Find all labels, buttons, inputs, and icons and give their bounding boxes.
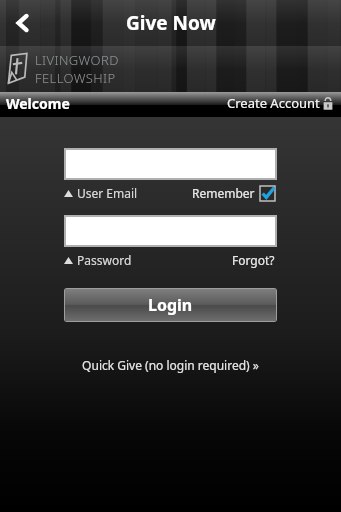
button[interactable]: Login xyxy=(65,289,276,321)
staticText: User Email xyxy=(77,185,138,201)
staticText: Remember xyxy=(192,185,255,201)
button[interactable]: Remember xyxy=(190,183,277,203)
staticText: Welcome xyxy=(6,94,70,113)
button[interactable]: Create Account xyxy=(225,92,335,114)
staticText: FELLOWSHIP xyxy=(35,69,116,87)
staticText: Give Now xyxy=(126,10,216,36)
staticText: LIVINGWORD xyxy=(35,51,119,69)
staticText: Create Account xyxy=(227,94,320,112)
button[interactable]: Quick Give (no login required) » xyxy=(64,354,277,376)
staticText: Login xyxy=(148,294,193,316)
staticText: Password xyxy=(77,252,132,268)
button[interactable]: Back xyxy=(0,0,46,46)
button[interactable]: Forgot? xyxy=(230,250,277,270)
